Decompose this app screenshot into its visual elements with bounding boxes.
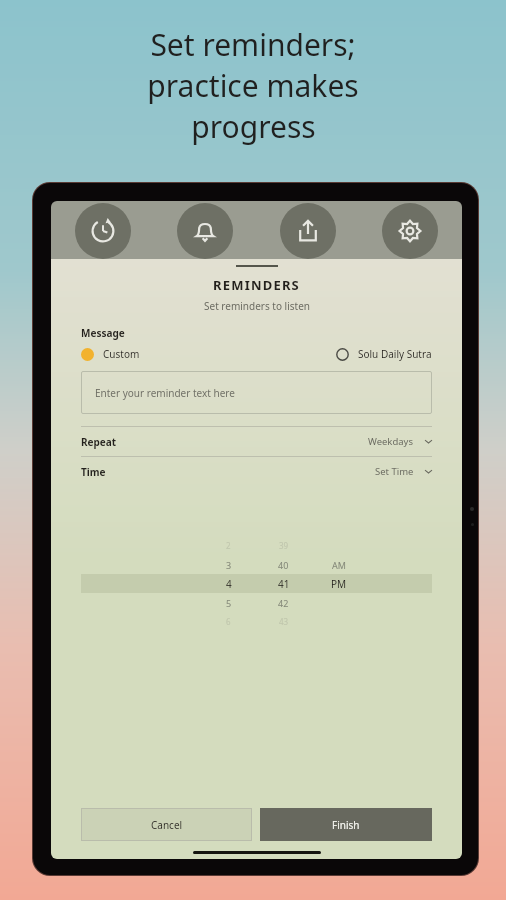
staticText: Set reminders to listen (204, 299, 310, 313)
button[interactable]: Share (280, 203, 336, 259)
staticText: Solu Daily Sutra (358, 347, 432, 361)
staticText: 41 (278, 577, 290, 591)
staticText: Weekdays (368, 435, 414, 448)
staticText: 40 (278, 559, 289, 571)
staticText: Cancel (151, 818, 183, 832)
button[interactable]: Enter your reminder text here (81, 371, 432, 414)
staticText: Custom (103, 347, 140, 361)
staticText: 6 (226, 616, 231, 627)
button[interactable]: Solu Daily Sutra (336, 347, 432, 361)
staticText: AM (332, 559, 346, 571)
staticText: Finish (332, 818, 360, 832)
button[interactable]: Cancel (81, 808, 252, 841)
staticText: progress (191, 106, 316, 147)
staticText: Enter your reminder text here (95, 386, 235, 400)
staticText: Repeat (81, 435, 117, 449)
staticText: 4 (226, 577, 232, 591)
staticText: 5 (226, 597, 232, 609)
staticText: practice makes (147, 65, 359, 106)
staticText: Set Time (375, 465, 414, 478)
button[interactable]: Finish (260, 808, 432, 841)
staticText: 42 (278, 597, 289, 609)
button[interactable]: History (75, 203, 131, 259)
staticText: PM (331, 577, 347, 591)
staticText: 43 (279, 616, 289, 627)
staticText: Message (81, 326, 125, 340)
staticText: 3 (226, 559, 232, 571)
button[interactable]: Reminders (177, 203, 233, 259)
staticText: 2 (226, 540, 231, 551)
button[interactable]: Custom (81, 347, 146, 361)
button[interactable]: Repeat (81, 427, 432, 456)
button[interactable]: Settings (382, 203, 438, 259)
staticText: Set reminders; (150, 24, 356, 65)
staticText: 39 (279, 540, 289, 551)
staticText: Time (81, 465, 106, 479)
button[interactable]: Time (81, 457, 432, 486)
staticText: REMINDERS (213, 276, 300, 294)
